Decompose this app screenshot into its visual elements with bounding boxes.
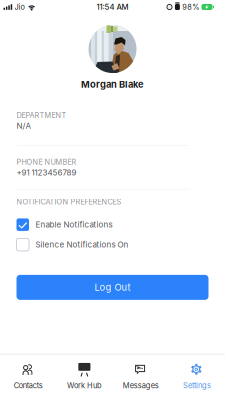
staticText: Morgan Blake — [81, 79, 144, 90]
staticText: Jio — [15, 3, 25, 11]
button[interactable]: Contacts — [0, 363, 56, 390]
staticText: Messages — [123, 381, 159, 390]
staticText: 98% — [182, 3, 199, 11]
staticText: Work Hub — [67, 381, 102, 390]
staticText: Settings — [183, 381, 211, 390]
staticText: N/A — [16, 121, 31, 131]
staticText: PHONE NUMBER — [16, 158, 76, 167]
button[interactable]: Log Out — [16, 275, 208, 300]
button[interactable]: Enable Notifications — [16, 218, 208, 231]
staticText: Contacts — [14, 381, 43, 390]
staticText: 11:54 AM — [96, 2, 128, 12]
staticText: Enable Notifications — [35, 220, 112, 229]
staticText: +91 1123456789 — [16, 168, 76, 177]
button[interactable]: Settings — [169, 363, 225, 390]
staticText: Silence Notifications On — [35, 240, 128, 249]
button[interactable]: Messages — [112, 363, 169, 390]
button[interactable]: Silence Notifications On — [16, 238, 208, 251]
staticText: DEPARTMENT — [16, 111, 66, 120]
button[interactable]: Work Hub — [56, 363, 112, 390]
staticText: Log Out — [94, 282, 130, 293]
staticText: NOTIFICATION PREFERENCES — [16, 197, 121, 206]
